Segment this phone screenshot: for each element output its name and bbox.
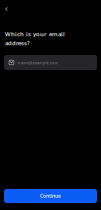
button[interactable]: Continue bbox=[4, 189, 97, 203]
staticText: name@example.com bbox=[17, 60, 58, 65]
staticText: Continue bbox=[40, 193, 61, 199]
staticText: Which is your email address? bbox=[5, 30, 65, 47]
button[interactable]: Back bbox=[0, 0, 18, 20]
